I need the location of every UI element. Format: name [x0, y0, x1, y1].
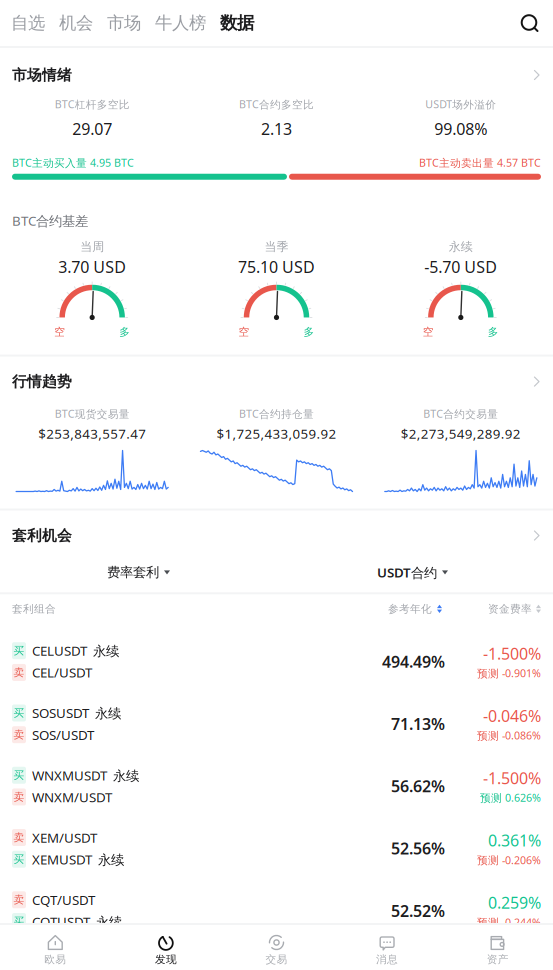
staticText: XEMUSDT 永续 — [32, 850, 124, 868]
button[interactable]: 交易 — [221, 925, 332, 970]
button[interactable]: 卖 — [0, 879, 553, 942]
staticText: 参考年化 — [388, 602, 432, 615]
staticText: 行情趋势 — [12, 373, 72, 391]
staticText: BTC主动卖出量 4.57 BTC — [419, 155, 541, 170]
staticText: 空 — [238, 325, 249, 339]
staticText: -5.70 USD — [424, 256, 497, 277]
staticText: SOS/USDT — [32, 726, 94, 744]
staticText: USDT合约 — [377, 563, 437, 581]
button[interactable]: 自选 — [11, 12, 45, 34]
staticText: 买 — [13, 853, 24, 866]
staticText: 卖 — [13, 893, 24, 906]
staticText: 资金费率 — [488, 602, 532, 615]
staticText: $1,725,433,059.92 — [216, 425, 336, 442]
staticText: 市场 — [107, 12, 141, 34]
staticText: 71.13% — [391, 713, 445, 734]
staticText: 494.49% — [382, 651, 445, 672]
staticText: 交易 — [265, 953, 287, 966]
staticText: 买 — [13, 644, 24, 657]
staticText: BTC合约基差 — [12, 212, 88, 229]
button[interactable]: 行情趋势 — [0, 357, 553, 391]
staticText: 29.07 — [72, 118, 112, 139]
staticText: -0.046% — [483, 705, 541, 726]
staticText: 欧易 — [44, 953, 66, 966]
staticText: XEM/USDT — [32, 829, 97, 846]
staticText: 3.70 USD — [58, 256, 126, 277]
button[interactable]: 市场情绪 — [0, 48, 553, 84]
staticText: CQTUSDT 永续 — [32, 913, 122, 930]
staticText: 永续 — [449, 239, 473, 254]
staticText: 当周 — [80, 239, 104, 254]
staticText: 52.52% — [391, 900, 445, 921]
button[interactable]: 牛人榜 — [155, 12, 206, 34]
button[interactable]: 发现 — [111, 925, 221, 970]
staticText: WNXM/USDT — [32, 788, 112, 806]
staticText: 市场情绪 — [12, 66, 72, 84]
staticText: 卖 — [13, 831, 24, 844]
staticText: -1.500% — [483, 767, 541, 789]
staticText: 自选 — [11, 12, 45, 34]
staticText: 买 — [13, 706, 24, 719]
staticText: CELUSDT 永续 — [32, 642, 119, 660]
staticText: 预测 0.626% — [480, 791, 541, 805]
staticText: 多 — [119, 325, 130, 339]
button[interactable]: 欧易 — [0, 925, 111, 970]
staticText: 预测 -0.244% — [477, 915, 541, 929]
staticText: 卖 — [13, 790, 24, 803]
staticText: 预测 -0.086% — [477, 728, 541, 743]
staticText: 套利机会 — [12, 526, 72, 544]
staticText: 预测 -0.901% — [477, 666, 541, 680]
staticText: 56.62% — [391, 775, 445, 797]
staticText: 买 — [13, 769, 24, 782]
staticText: CEL/USDT — [32, 664, 92, 681]
button[interactable]: 数据 — [220, 12, 254, 34]
staticText: 买 — [13, 915, 24, 928]
staticText: CQT/USDT — [32, 891, 95, 909]
button[interactable]: 资产 — [442, 925, 553, 970]
staticText: 0.259% — [488, 892, 541, 913]
staticText: 数据 — [220, 12, 254, 34]
staticText: USDT场外溢价 — [425, 97, 496, 111]
staticText: 卖 — [13, 728, 24, 741]
staticText: 多 — [488, 325, 499, 339]
button[interactable]: 买 — [0, 693, 553, 755]
staticText: 消息 — [376, 953, 398, 966]
staticText: 99.08% — [434, 118, 487, 139]
staticText: 套利组合 — [12, 602, 56, 615]
staticText: BTC杠杆多空比 — [55, 97, 130, 111]
staticText: 卖 — [13, 666, 24, 679]
staticText: 机会 — [59, 12, 93, 34]
staticText: 发现 — [155, 953, 177, 966]
button[interactable]: 机会 — [59, 12, 93, 34]
staticText: BTC合约持仓量 — [239, 407, 314, 421]
staticText: 预测 -0.206% — [477, 853, 541, 867]
staticText: SOSUSDT 永续 — [32, 704, 121, 722]
staticText: 资产 — [487, 953, 509, 966]
button[interactable]: 费率套利 — [107, 564, 170, 581]
button[interactable]: 买 — [0, 630, 553, 693]
staticText: 75.10 USD — [238, 256, 315, 277]
staticText: 空 — [423, 325, 434, 339]
staticText: BTC合约多空比 — [239, 97, 314, 111]
staticText: BTC主动买入量 4.95 BTC — [12, 155, 134, 170]
button[interactable]: 卖 — [0, 817, 553, 879]
staticText: 费率套利 — [107, 564, 159, 581]
button[interactable]: 市场 — [107, 12, 141, 34]
staticText: BTC现货交易量 — [55, 407, 130, 421]
staticText: 当季 — [264, 239, 288, 254]
button[interactable]: 买 — [0, 755, 553, 817]
staticText: 2.13 — [261, 118, 292, 139]
staticText: -1.500% — [483, 643, 541, 664]
staticText: 0.361% — [488, 830, 541, 851]
staticText: BTC合约交易量 — [423, 407, 498, 421]
button[interactable]: USDT合约 — [377, 563, 448, 581]
staticText: 牛人榜 — [155, 12, 206, 34]
staticText: 空 — [54, 325, 65, 339]
button[interactable]: 套利机会 — [0, 510, 553, 544]
button[interactable]: 消息 — [332, 925, 442, 970]
staticText: $2,273,549,289.92 — [401, 425, 521, 442]
button[interactable]: 搜索 — [516, 10, 542, 36]
staticText: WNXMUSDT 永续 — [32, 766, 139, 784]
staticText: $253,843,557.47 — [38, 425, 146, 442]
staticText: 多 — [303, 325, 314, 339]
